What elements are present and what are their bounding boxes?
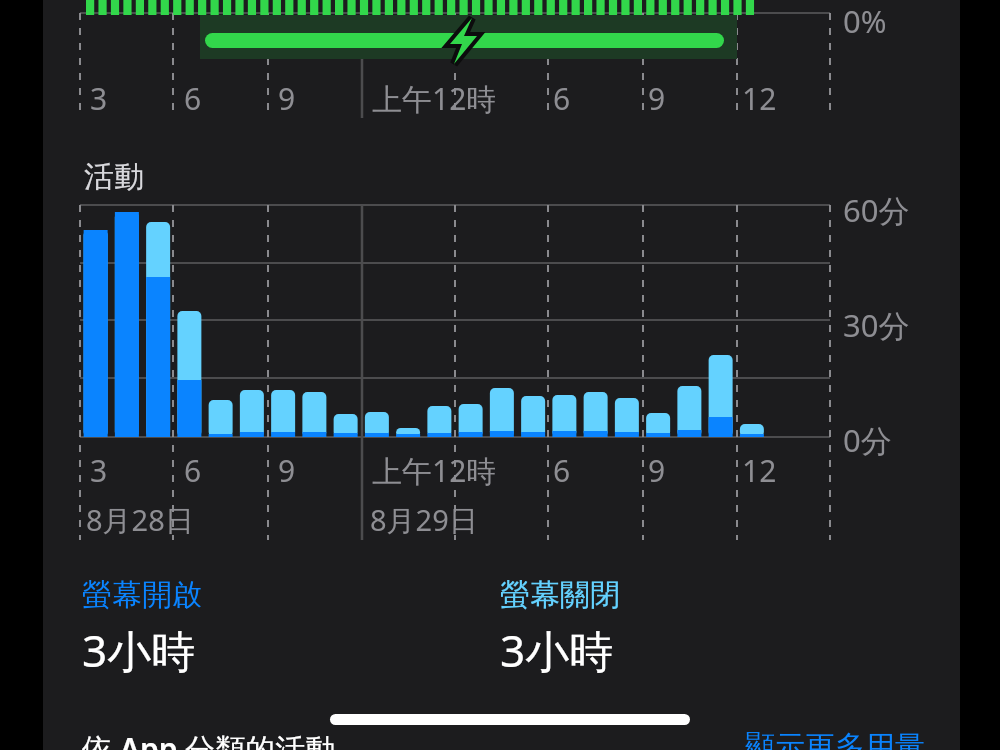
button[interactable]: Battery and screen activity usage chart (0, 0, 1000, 750)
